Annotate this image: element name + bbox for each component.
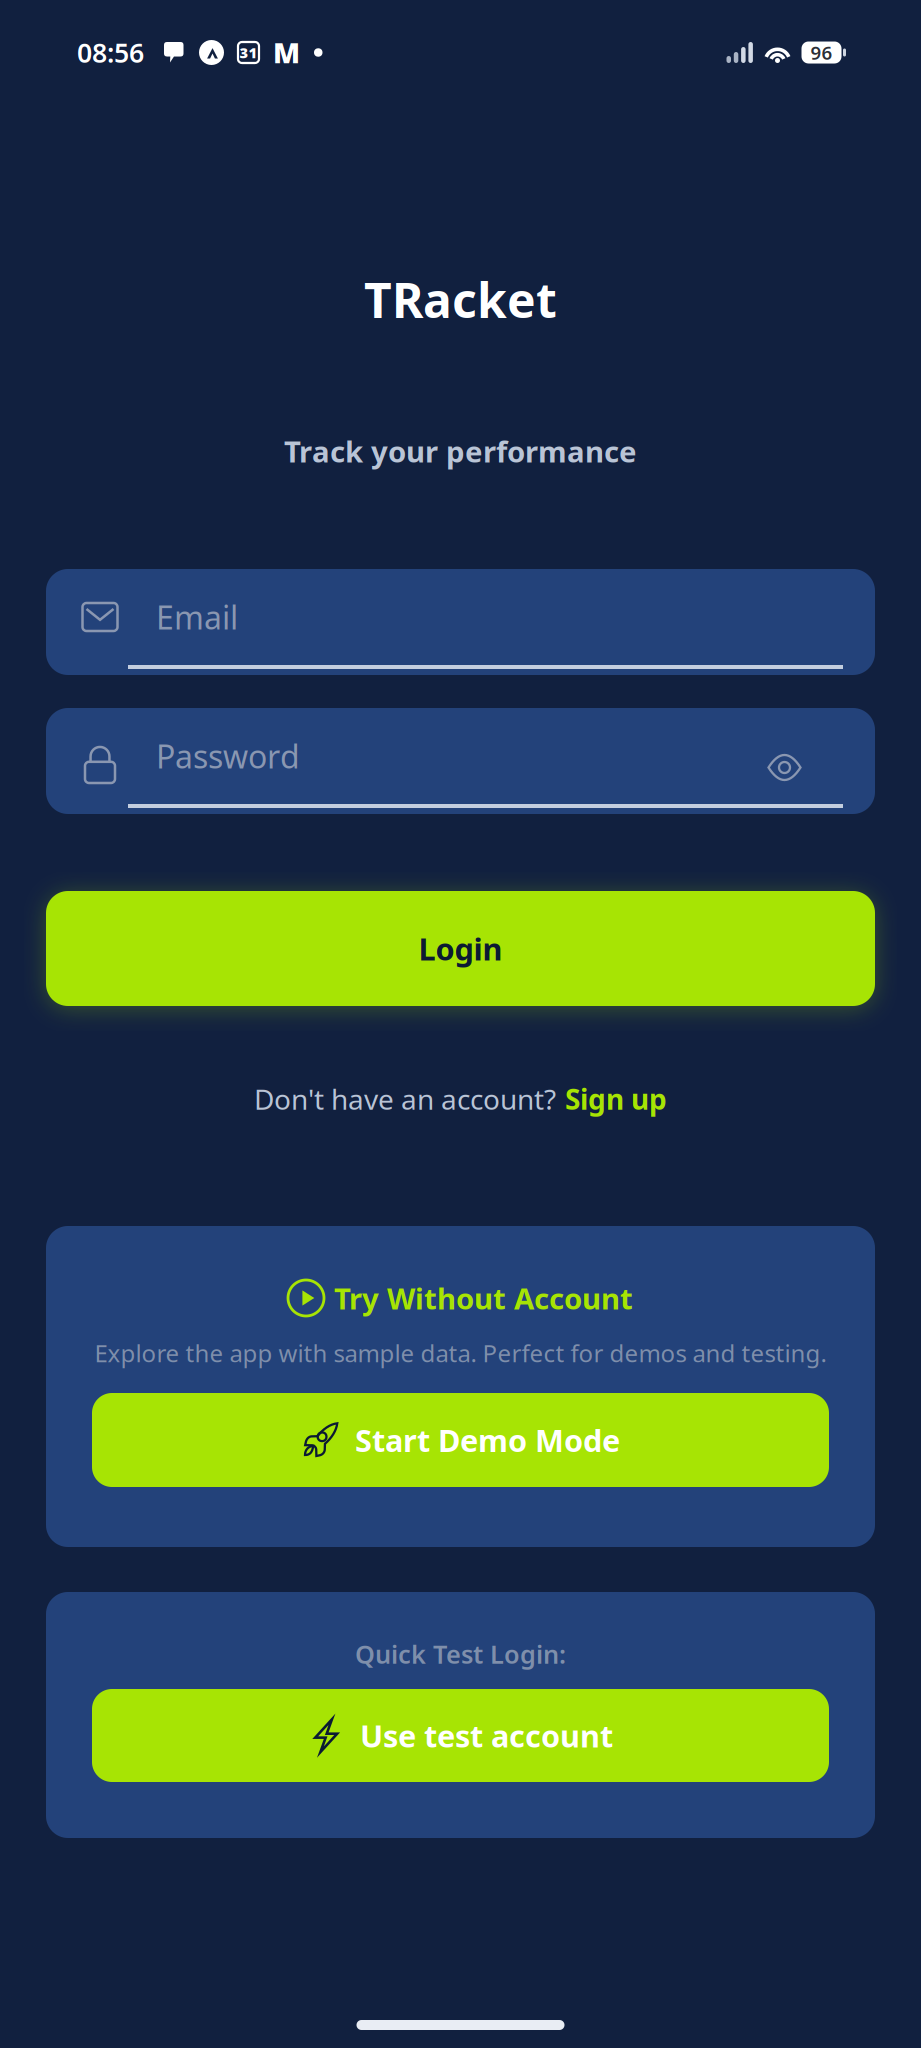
staticText: M [273, 34, 300, 71]
button[interactable]: Show password [767, 732, 802, 780]
staticText: 08:56 [77, 35, 144, 70]
staticText: 31 [239, 43, 257, 62]
staticText: Login [418, 928, 502, 969]
staticText: 96 [810, 40, 832, 65]
staticText: Try Without Account [334, 1278, 633, 1317]
staticText: Sign up [565, 1080, 667, 1118]
staticText: Track your performance [284, 431, 637, 470]
button[interactable]: Use test account [92, 1689, 829, 1782]
staticText: TRacket [364, 268, 557, 331]
staticText: Password [156, 735, 300, 777]
staticText: Explore the app with sample data. Perfec… [94, 1337, 826, 1369]
staticText: Quick Test Login: [355, 1637, 566, 1671]
button[interactable]: Login [46, 891, 875, 1006]
staticText: Start Demo Mode [355, 1420, 620, 1460]
staticText: Email [156, 596, 238, 638]
button[interactable]: Don't have an account? [254, 1083, 667, 1115]
button[interactable]: Start Demo Mode [92, 1393, 829, 1487]
staticText: Use test account [360, 1715, 613, 1756]
button[interactable]: Try Without Account [288, 1278, 633, 1318]
staticText: Don't have an account? [254, 1080, 556, 1118]
button[interactable]: Email [46, 569, 875, 675]
button[interactable]: Password [46, 708, 875, 814]
